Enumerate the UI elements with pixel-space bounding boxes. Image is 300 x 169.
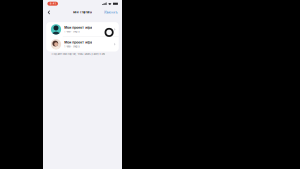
button[interactable]: Мой проект игра bbox=[46, 22, 119, 37]
staticText: Мои стартапы bbox=[73, 11, 92, 14]
staticText: 1 член · вчера bbox=[64, 30, 79, 33]
staticText: Мой проект игра bbox=[64, 40, 92, 44]
staticText: Создайте свой стартап, чтобы начать рабо… bbox=[51, 52, 105, 55]
staticText: 1 член · вчера bbox=[64, 45, 79, 48]
staticText: 9:41 bbox=[50, 2, 56, 5]
button[interactable]: Мой проект игра bbox=[46, 37, 119, 52]
button[interactable]: Back bbox=[46, 9, 52, 16]
staticText: Изменить bbox=[104, 11, 118, 14]
button[interactable]: Изменить bbox=[103, 10, 119, 15]
staticText: Мой проект игра bbox=[64, 26, 92, 30]
